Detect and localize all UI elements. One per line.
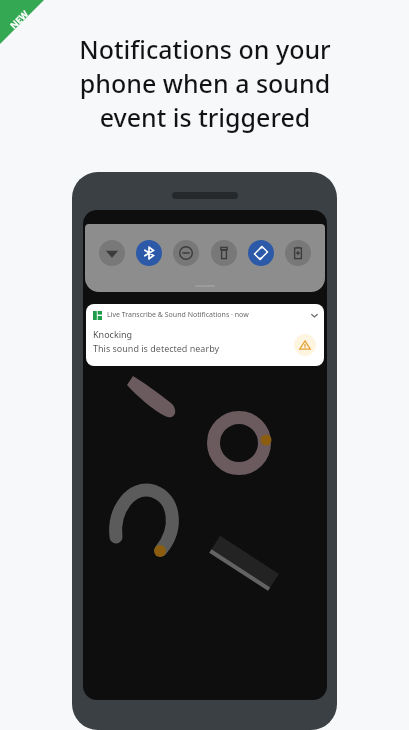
staticText: NEW — [7, 7, 31, 31]
button[interactable]: Auto rotate — [248, 240, 274, 266]
staticText: Live Transcribe & Sound Notifications · … — [107, 310, 249, 320]
button[interactable]: Do not disturb — [173, 240, 199, 266]
staticText: Knocking — [93, 328, 133, 340]
button[interactable]: Live Transcribe & Sound Notifications · … — [86, 304, 324, 366]
button[interactable]: Wi-Fi — [99, 240, 125, 266]
button[interactable]: Expand notification — [309, 310, 319, 320]
button[interactable]: Battery saver — [285, 240, 311, 266]
button[interactable]: Bluetooth — [136, 240, 162, 266]
button[interactable]: Flashlight — [211, 240, 237, 266]
staticText: Notifications on your phone when a sound… — [79, 32, 331, 134]
staticText: This sound is detected nearby — [93, 342, 220, 354]
